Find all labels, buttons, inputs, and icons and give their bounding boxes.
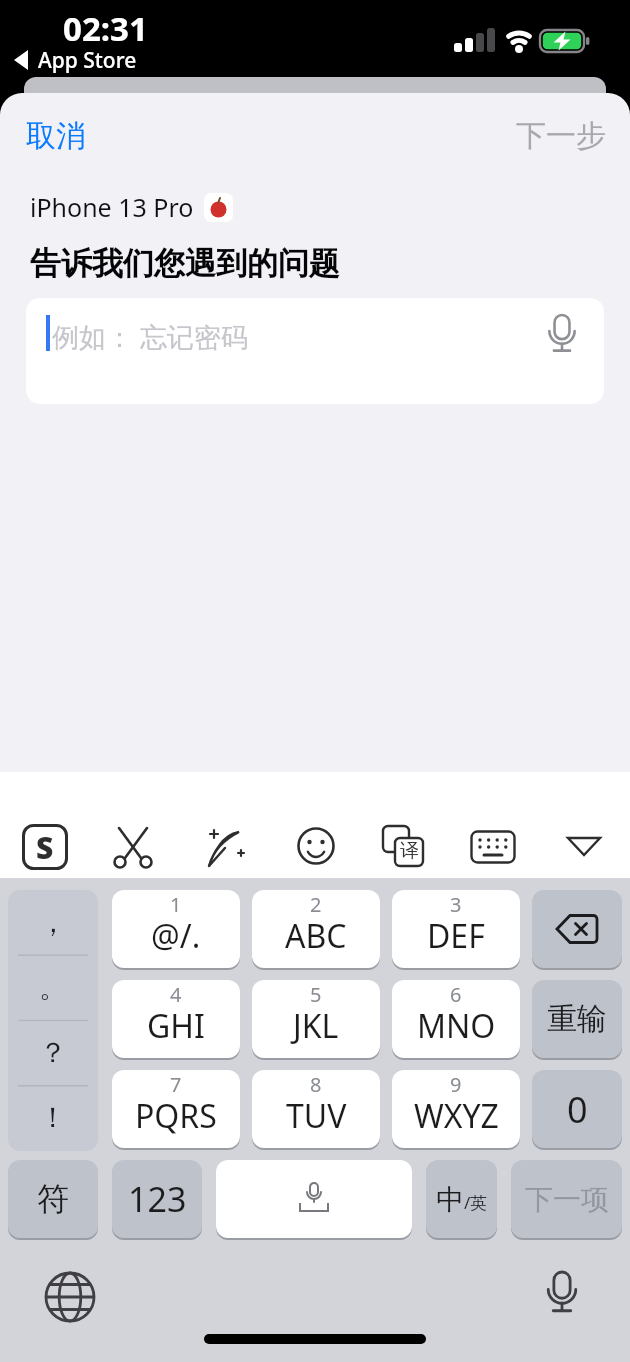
- staticText: 符: [37, 1179, 69, 1219]
- staticText: /英: [464, 1191, 488, 1214]
- staticText: 123: [128, 1176, 187, 1222]
- staticText: 例如： 忘记密码: [52, 318, 249, 355]
- staticText: TUV: [286, 1094, 347, 1138]
- staticText: ，: [39, 905, 67, 940]
- staticText: @/.: [151, 914, 201, 958]
- staticText: 译: [400, 839, 419, 863]
- staticText: 下一步: [516, 117, 606, 155]
- button[interactable]: [111, 826, 155, 870]
- staticText: 下一项: [525, 1182, 609, 1217]
- staticText: 1: [170, 891, 182, 918]
- staticText: WXYZ: [414, 1094, 499, 1138]
- button[interactable]: [296, 826, 336, 866]
- button[interactable]: 6: [392, 980, 520, 1058]
- button[interactable]: ，: [8, 890, 98, 955]
- staticText: 重输: [547, 1000, 607, 1038]
- button[interactable]: [201, 824, 249, 872]
- staticText: GHI: [147, 1004, 205, 1048]
- staticText: 2: [310, 891, 322, 918]
- staticText: DEF: [427, 914, 485, 958]
- button[interactable]: 例如： 忘记密码: [26, 298, 604, 404]
- button[interactable]: 7: [112, 1070, 240, 1148]
- staticText: ？: [39, 1035, 67, 1070]
- staticText: 9: [450, 1071, 462, 1098]
- button[interactable]: 3: [392, 890, 520, 968]
- button[interactable]: 123: [112, 1160, 202, 1238]
- staticText: 6: [450, 981, 462, 1008]
- staticText: 3: [450, 891, 462, 918]
- button[interactable]: [43, 1270, 97, 1324]
- button[interactable]: 4: [112, 980, 240, 1058]
- staticText: ABC: [285, 914, 347, 958]
- button[interactable]: 译: [381, 824, 427, 870]
- button[interactable]: 下一项: [511, 1160, 622, 1238]
- staticText: 取消: [26, 117, 86, 155]
- staticText: 5: [310, 981, 322, 1008]
- staticText: ！: [39, 1100, 67, 1135]
- staticText: 8: [310, 1071, 322, 1098]
- staticText: 7: [170, 1071, 182, 1098]
- staticText: MNO: [417, 1004, 496, 1048]
- button[interactable]: 下一步: [516, 117, 606, 155]
- button[interactable]: [532, 890, 622, 968]
- staticText: 中: [436, 1182, 464, 1217]
- button[interactable]: [216, 1160, 412, 1238]
- button[interactable]: 中: [426, 1160, 497, 1238]
- button[interactable]: ？: [8, 1020, 98, 1085]
- staticText: 告诉我们您遇到的问题: [30, 244, 340, 283]
- button[interactable]: 2: [252, 890, 380, 968]
- staticText: iPhone 13 Pro: [30, 190, 194, 224]
- staticText: 4: [170, 981, 182, 1008]
- button[interactable]: ！: [8, 1085, 98, 1150]
- button[interactable]: 5: [252, 980, 380, 1058]
- button[interactable]: [540, 1266, 584, 1322]
- staticText: 0: [567, 1085, 588, 1134]
- button[interactable]: 。: [8, 955, 98, 1020]
- staticText: PQRS: [135, 1094, 217, 1138]
- button[interactable]: 0: [532, 1070, 622, 1148]
- staticText: JKL: [293, 1004, 339, 1048]
- staticText: S: [36, 827, 54, 868]
- button[interactable]: 1: [112, 890, 240, 968]
- button[interactable]: [566, 836, 602, 858]
- button[interactable]: 8: [252, 1070, 380, 1148]
- button[interactable]: 取消: [26, 117, 86, 155]
- button[interactable]: 重输: [532, 980, 622, 1058]
- staticText: App Store: [38, 46, 137, 75]
- button[interactable]: [470, 830, 516, 864]
- button[interactable]: 符: [8, 1160, 98, 1238]
- button[interactable]: S: [22, 824, 68, 870]
- button[interactable]: 9: [392, 1070, 520, 1148]
- staticText: 。: [39, 970, 67, 1005]
- staticText: 02:31: [63, 6, 148, 51]
